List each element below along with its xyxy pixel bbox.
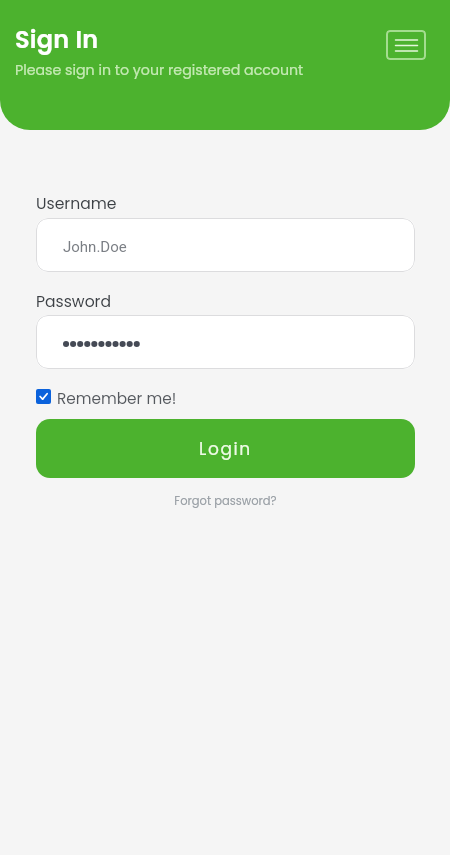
staticText: Please sign in to your registered accoun… [15, 60, 304, 80]
staticText: Sign In [15, 23, 99, 57]
button[interactable] [36, 315, 415, 369]
button[interactable]: Menu [386, 30, 426, 60]
button[interactable]: John.Doe [36, 218, 415, 272]
staticText: Login [199, 437, 252, 461]
button[interactable]: Forgot password? [174, 493, 277, 509]
staticText: Password [36, 291, 111, 313]
button[interactable]: Login [36, 419, 415, 478]
button[interactable]: Remember me! [36, 388, 177, 405]
staticText: John.Doe [63, 238, 127, 256]
staticText: Remember me! [57, 388, 177, 405]
staticText: Username [36, 193, 117, 215]
